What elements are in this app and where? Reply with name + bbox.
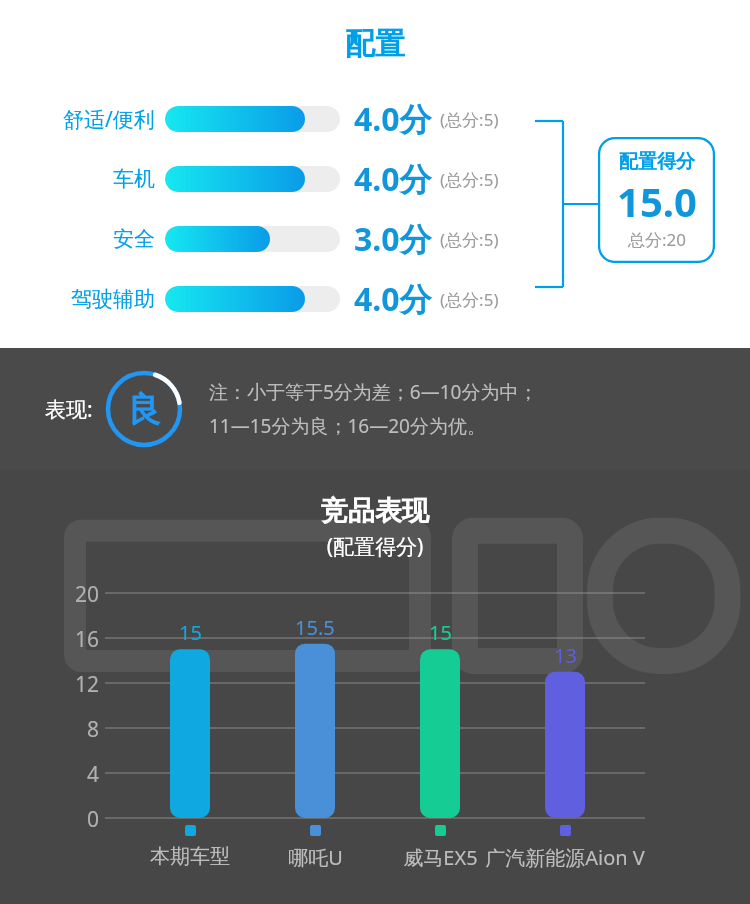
staticText: 总分:20 [628, 228, 687, 251]
staticText: 配置 [345, 25, 405, 63]
staticText: 15.0 [617, 174, 697, 228]
button[interactable]: 威马EX5 [350, 825, 530, 871]
staticText: 15.5 [295, 614, 335, 641]
staticText: 哪吒U [288, 844, 343, 871]
staticText: 16 [75, 625, 100, 654]
staticText: 15 [179, 619, 202, 646]
button[interactable]: 驾驶辅助 [0, 276, 750, 322]
staticText: 表现: [45, 395, 93, 424]
staticText: 15 [429, 619, 452, 646]
staticText: 20 [75, 580, 100, 609]
staticText: 安全 [113, 226, 155, 252]
button[interactable]: 哪吒U [225, 825, 405, 871]
button[interactable]: 车机 [0, 156, 750, 202]
staticText: 4.0分 [354, 97, 432, 141]
staticText: 3.0分 [354, 217, 432, 261]
button[interactable]: 本期车型 [100, 825, 280, 869]
button[interactable]: 舒适/便利 [0, 96, 750, 142]
staticText: 驾驶辅助 [71, 286, 155, 312]
staticText: 竞品表现 [0, 494, 750, 528]
staticText: (配置得分) [0, 532, 750, 561]
staticText: 威马EX5 [403, 844, 478, 871]
button[interactable]: 配置得分 [598, 137, 715, 263]
staticText: 舒适/便利 [63, 105, 155, 134]
staticText: 配置得分 [619, 150, 695, 174]
staticText: 12 [75, 670, 100, 699]
staticText: 8 [87, 715, 100, 744]
staticText: 4 [87, 760, 100, 789]
button[interactable]: 安全 [0, 216, 750, 262]
staticText: 注：小于等于5分为差；6—10分为中； [209, 379, 538, 405]
staticText: 本期车型 [150, 844, 230, 869]
staticText: 0 [87, 805, 100, 834]
staticText: 良 [127, 388, 161, 431]
staticText: 4.0分 [354, 157, 432, 201]
button[interactable]: 广汽新能源Aion V [475, 825, 655, 871]
staticText: (总分:5) [440, 228, 499, 251]
staticText: 11—15分为良；16—20分为优。 [209, 413, 486, 439]
staticText: (总分:5) [440, 288, 499, 311]
staticText: 广汽新能源Aion V [485, 844, 645, 871]
staticText: 13 [554, 642, 577, 669]
staticText: 车机 [113, 166, 155, 192]
staticText: (总分:5) [440, 168, 499, 191]
staticText: (总分:5) [440, 108, 499, 131]
staticText: 4.0分 [354, 277, 432, 321]
